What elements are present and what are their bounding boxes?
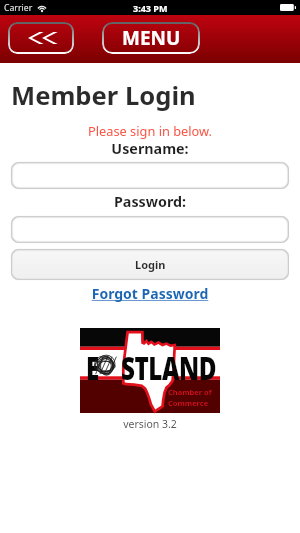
staticText: Please sign in below. [0, 122, 300, 139]
staticText: Login [135, 257, 166, 272]
staticText: E [86, 347, 99, 389]
staticText: Member Login [11, 78, 196, 113]
staticText: Commerce [168, 398, 209, 408]
staticText: Carrier [4, 2, 33, 14]
staticText: Password: [0, 192, 300, 211]
button[interactable]: Back [8, 22, 74, 54]
button[interactable]: Text field [11, 216, 289, 243]
staticText: Chamber of [168, 387, 212, 397]
button[interactable]: Text field [11, 162, 289, 189]
staticText: 3:43 PM [133, 2, 168, 14]
staticText: Username: [0, 139, 300, 158]
button[interactable]: Forgot Password [0, 284, 300, 303]
staticText: MENU [122, 25, 181, 51]
staticText: STLAND [121, 347, 216, 389]
button[interactable]: Login [11, 249, 289, 280]
button[interactable]: MENU [102, 22, 200, 54]
staticText: version 3.2 [0, 417, 300, 431]
